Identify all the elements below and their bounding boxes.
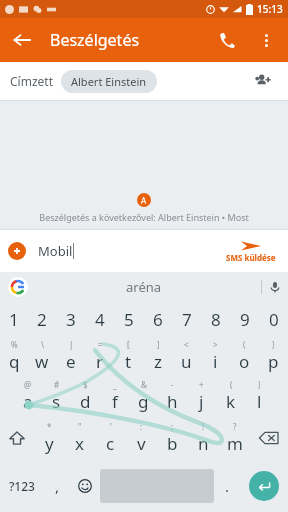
button[interactable]: &: [129, 376, 158, 416]
staticText: 5: [124, 308, 134, 331]
button[interactable]: %: [0, 336, 28, 376]
button[interactable]: =: [85, 336, 114, 376]
staticText: m: [227, 432, 243, 455]
button[interactable]: Voice input: [262, 272, 288, 302]
button[interactable]: SMS küldése: [222, 240, 280, 263]
button[interactable]: <: [172, 336, 201, 376]
button[interactable]: [: [114, 336, 143, 376]
staticText: a: [23, 390, 33, 413]
staticText: c: [106, 432, 115, 455]
button[interactable]: ): [259, 336, 288, 376]
button[interactable]: Back: [0, 18, 44, 62]
staticText: %: [11, 339, 18, 350]
button[interactable]: 4: [85, 302, 114, 336]
staticText: ]: [157, 339, 160, 350]
button[interactable]: ?: [219, 416, 250, 460]
staticText: Mobil: [38, 242, 73, 260]
button[interactable]: Emoji: [70, 460, 100, 512]
staticText: 4: [95, 308, 105, 331]
staticText: q: [9, 350, 20, 373]
button[interactable]: ': [95, 416, 126, 460]
staticText: <: [184, 339, 189, 350]
staticText: y: [45, 432, 54, 455]
button[interactable]: \: [28, 336, 56, 376]
button[interactable]: #: [42, 376, 71, 416]
staticText: p: [268, 350, 279, 373]
staticText: 9: [240, 308, 250, 331]
button[interactable]: Albert Einstein: [61, 70, 157, 93]
button[interactable]: >: [201, 336, 230, 376]
staticText: ?123: [9, 478, 35, 494]
button[interactable]: ": [64, 416, 95, 460]
staticText: s: [52, 390, 61, 413]
staticText: ": [78, 421, 82, 432]
staticText: 1: [9, 308, 19, 331]
button[interactable]: -: [158, 376, 187, 416]
staticText: &: [141, 379, 147, 390]
button[interactable]: Call: [206, 19, 248, 61]
staticText: u: [181, 350, 192, 373]
button[interactable]: _: [100, 376, 129, 416]
staticText: .: [225, 476, 230, 496]
button[interactable]: ?123: [0, 460, 44, 512]
staticText: i: [213, 350, 218, 373]
staticText: h: [167, 390, 178, 413]
staticText: ': [110, 421, 112, 432]
button[interactable]: 3: [56, 302, 85, 336]
button[interactable]: .: [214, 460, 240, 512]
staticText: z: [154, 350, 162, 373]
staticText: o: [239, 350, 250, 373]
button[interactable]: Attach: [8, 242, 26, 260]
staticText: >: [213, 339, 218, 350]
staticText: b: [167, 432, 178, 455]
staticText: j: [199, 390, 204, 413]
button[interactable]: +: [187, 376, 216, 416]
staticText: r: [96, 350, 104, 373]
staticText: !: [202, 421, 205, 432]
button[interactable]: (: [230, 336, 259, 376]
button[interactable]: (: [216, 376, 245, 416]
button[interactable]: Enter: [249, 471, 279, 501]
button[interactable]: Add people: [248, 66, 278, 96]
button[interactable]: ;: [157, 416, 188, 460]
staticText: 6: [153, 308, 163, 331]
button[interactable]: ,: [44, 460, 70, 512]
staticText: :: [140, 421, 143, 432]
button[interactable]: $: [71, 376, 100, 416]
staticText: e: [66, 350, 76, 373]
button[interactable]: 8: [201, 302, 230, 336]
button[interactable]: 5: [114, 302, 143, 336]
staticText: \: [41, 339, 44, 350]
staticText: =: [98, 339, 103, 350]
button[interactable]: 6: [143, 302, 172, 336]
button[interactable]: 2: [28, 302, 56, 336]
staticText: f: [112, 390, 118, 413]
button[interactable]: !: [188, 416, 219, 460]
button[interactable]: 1: [0, 302, 28, 336]
staticText: (: [243, 339, 246, 350]
staticText: x: [75, 432, 84, 455]
staticText: Beszélgetés: [50, 29, 140, 51]
staticText: t: [125, 350, 132, 373]
button[interactable]: Shift: [0, 416, 34, 460]
button[interactable]: |: [56, 336, 85, 376]
button[interactable]: Backspace: [250, 416, 288, 460]
staticText: A: [141, 195, 147, 206]
staticText: @: [24, 379, 32, 390]
button[interactable]: ): [245, 376, 274, 416]
staticText: v: [137, 432, 146, 455]
staticText: ?: [233, 421, 237, 432]
button[interactable]: 9: [230, 302, 259, 336]
button[interactable]: 0: [259, 302, 288, 336]
button[interactable]: aréna: [0, 272, 288, 302]
button[interactable]: 7: [172, 302, 201, 336]
staticText: ;: [171, 421, 174, 432]
button[interactable]: ]: [143, 336, 172, 376]
button[interactable]: *: [34, 416, 64, 460]
button[interactable]: @: [14, 376, 42, 416]
button[interactable]: :: [126, 416, 157, 460]
staticText: k: [226, 390, 236, 413]
button[interactable]: More options: [248, 22, 284, 58]
staticText: l: [257, 390, 262, 413]
